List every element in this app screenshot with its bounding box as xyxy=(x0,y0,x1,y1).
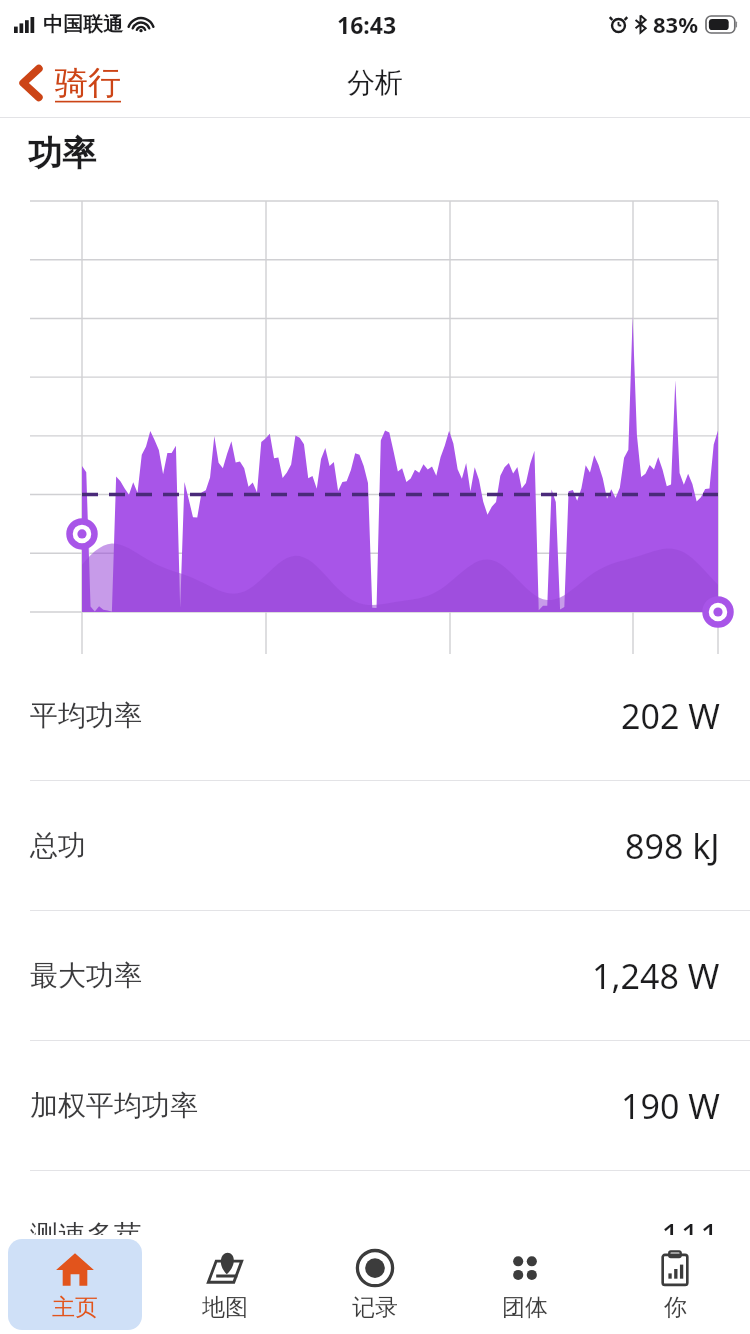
staticText: 总功 xyxy=(30,828,86,863)
button[interactable]: 团体 xyxy=(458,1239,592,1330)
staticText: 分析 xyxy=(347,65,403,100)
staticText: 功率 xyxy=(28,132,96,175)
button[interactable]: 记录 xyxy=(308,1239,442,1330)
staticText: 主页 xyxy=(52,1293,98,1322)
staticText: 你 xyxy=(664,1293,687,1322)
staticText: 加权平均功率 xyxy=(30,1088,198,1123)
button[interactable]: 总功 xyxy=(0,781,750,910)
staticText: 83% xyxy=(653,9,699,39)
staticText: 202 W xyxy=(621,693,720,739)
staticText: 骑行 xyxy=(55,62,121,104)
button[interactable]: 骑行 xyxy=(0,56,135,110)
button[interactable]: 测速多芽 xyxy=(0,1171,750,1300)
staticText: 团体 xyxy=(502,1293,548,1322)
staticText: 平均功率 xyxy=(30,698,142,733)
staticText: 16:43 xyxy=(337,9,397,40)
button[interactable]: 加权平均功率 xyxy=(0,1041,750,1170)
staticText: 190 W xyxy=(621,1083,720,1129)
staticText: 最大功率 xyxy=(30,958,142,993)
button[interactable]: 主页 xyxy=(8,1239,142,1330)
button[interactable]: 地图 xyxy=(158,1239,292,1330)
staticText: 中国联通 xyxy=(43,12,123,37)
staticText: 记录 xyxy=(352,1293,398,1322)
staticText: 测速多芽 xyxy=(30,1218,142,1253)
staticText: 地图 xyxy=(202,1293,248,1322)
staticText: 898 kJ xyxy=(625,823,720,869)
button[interactable]: 平均功率 xyxy=(0,651,750,780)
staticText: 111 xyxy=(661,1213,720,1259)
staticText: 1,248 W xyxy=(592,953,720,999)
button[interactable]: 最大功率 xyxy=(0,911,750,1040)
button[interactable]: 你 xyxy=(608,1239,742,1330)
